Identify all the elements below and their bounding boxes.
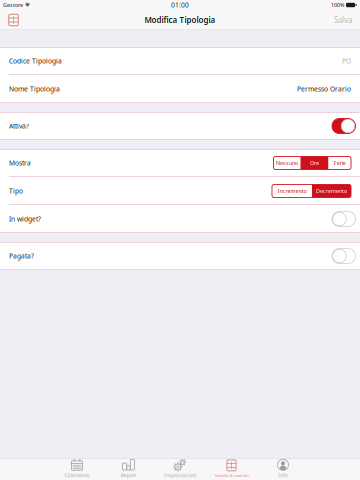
button[interactable]: Pagata? bbox=[332, 248, 355, 263]
button[interactable]: Ferie bbox=[328, 156, 351, 169]
staticText: Ore bbox=[310, 159, 319, 167]
staticText: Modifica Tipologia bbox=[144, 15, 215, 25]
staticText: Mostra bbox=[9, 159, 31, 167]
staticText: Permesso Orario bbox=[297, 85, 351, 93]
staticText: Nessuno bbox=[276, 159, 298, 167]
button[interactable]: Nessuno bbox=[273, 156, 300, 169]
staticText: Ferie bbox=[334, 159, 346, 167]
button[interactable]: Info bbox=[257, 458, 309, 480]
button[interactable]: Ore bbox=[300, 156, 328, 169]
staticText: Codice Tipologia bbox=[9, 57, 62, 65]
button[interactable]: Incremento bbox=[272, 184, 312, 197]
staticText: Tipo bbox=[9, 187, 23, 195]
button[interactable]: Salva bbox=[326, 10, 360, 30]
staticText: Impostazioni bbox=[164, 472, 196, 479]
staticText: 01:00 bbox=[171, 1, 189, 9]
staticText: Nome Tipologia bbox=[9, 85, 60, 93]
button[interactable]: Decremento bbox=[312, 184, 351, 197]
button[interactable]: Codice Tipologia bbox=[0, 47, 360, 75]
staticText: Incremento bbox=[277, 187, 306, 195]
button[interactable]: In widget? bbox=[332, 211, 355, 226]
staticText: Attiva? bbox=[9, 122, 29, 130]
staticText: Pagata? bbox=[9, 252, 34, 260]
button[interactable]: Report bbox=[103, 458, 154, 480]
button[interactable]: Impostazioni bbox=[154, 458, 206, 480]
staticText: Pannello di controllo bbox=[214, 473, 248, 478]
staticText: In widget? bbox=[9, 215, 41, 223]
staticText: Salva bbox=[334, 15, 352, 25]
staticText: Gestore bbox=[3, 1, 23, 9]
button[interactable]: Pannello di controllo bbox=[206, 458, 257, 480]
button[interactable]: Attiva? bbox=[332, 118, 355, 133]
staticText: Report bbox=[120, 472, 136, 479]
staticText: Info bbox=[278, 472, 288, 479]
staticText: Decremento bbox=[316, 187, 347, 195]
staticText: Calendario bbox=[64, 472, 89, 479]
staticText: PO bbox=[342, 57, 351, 65]
button[interactable]: Nome Tipologia bbox=[0, 75, 360, 103]
button[interactable]: Pannello di controllo bbox=[0, 10, 25, 30]
button[interactable]: Calendario bbox=[51, 458, 103, 480]
staticText: 100% bbox=[331, 1, 344, 9]
